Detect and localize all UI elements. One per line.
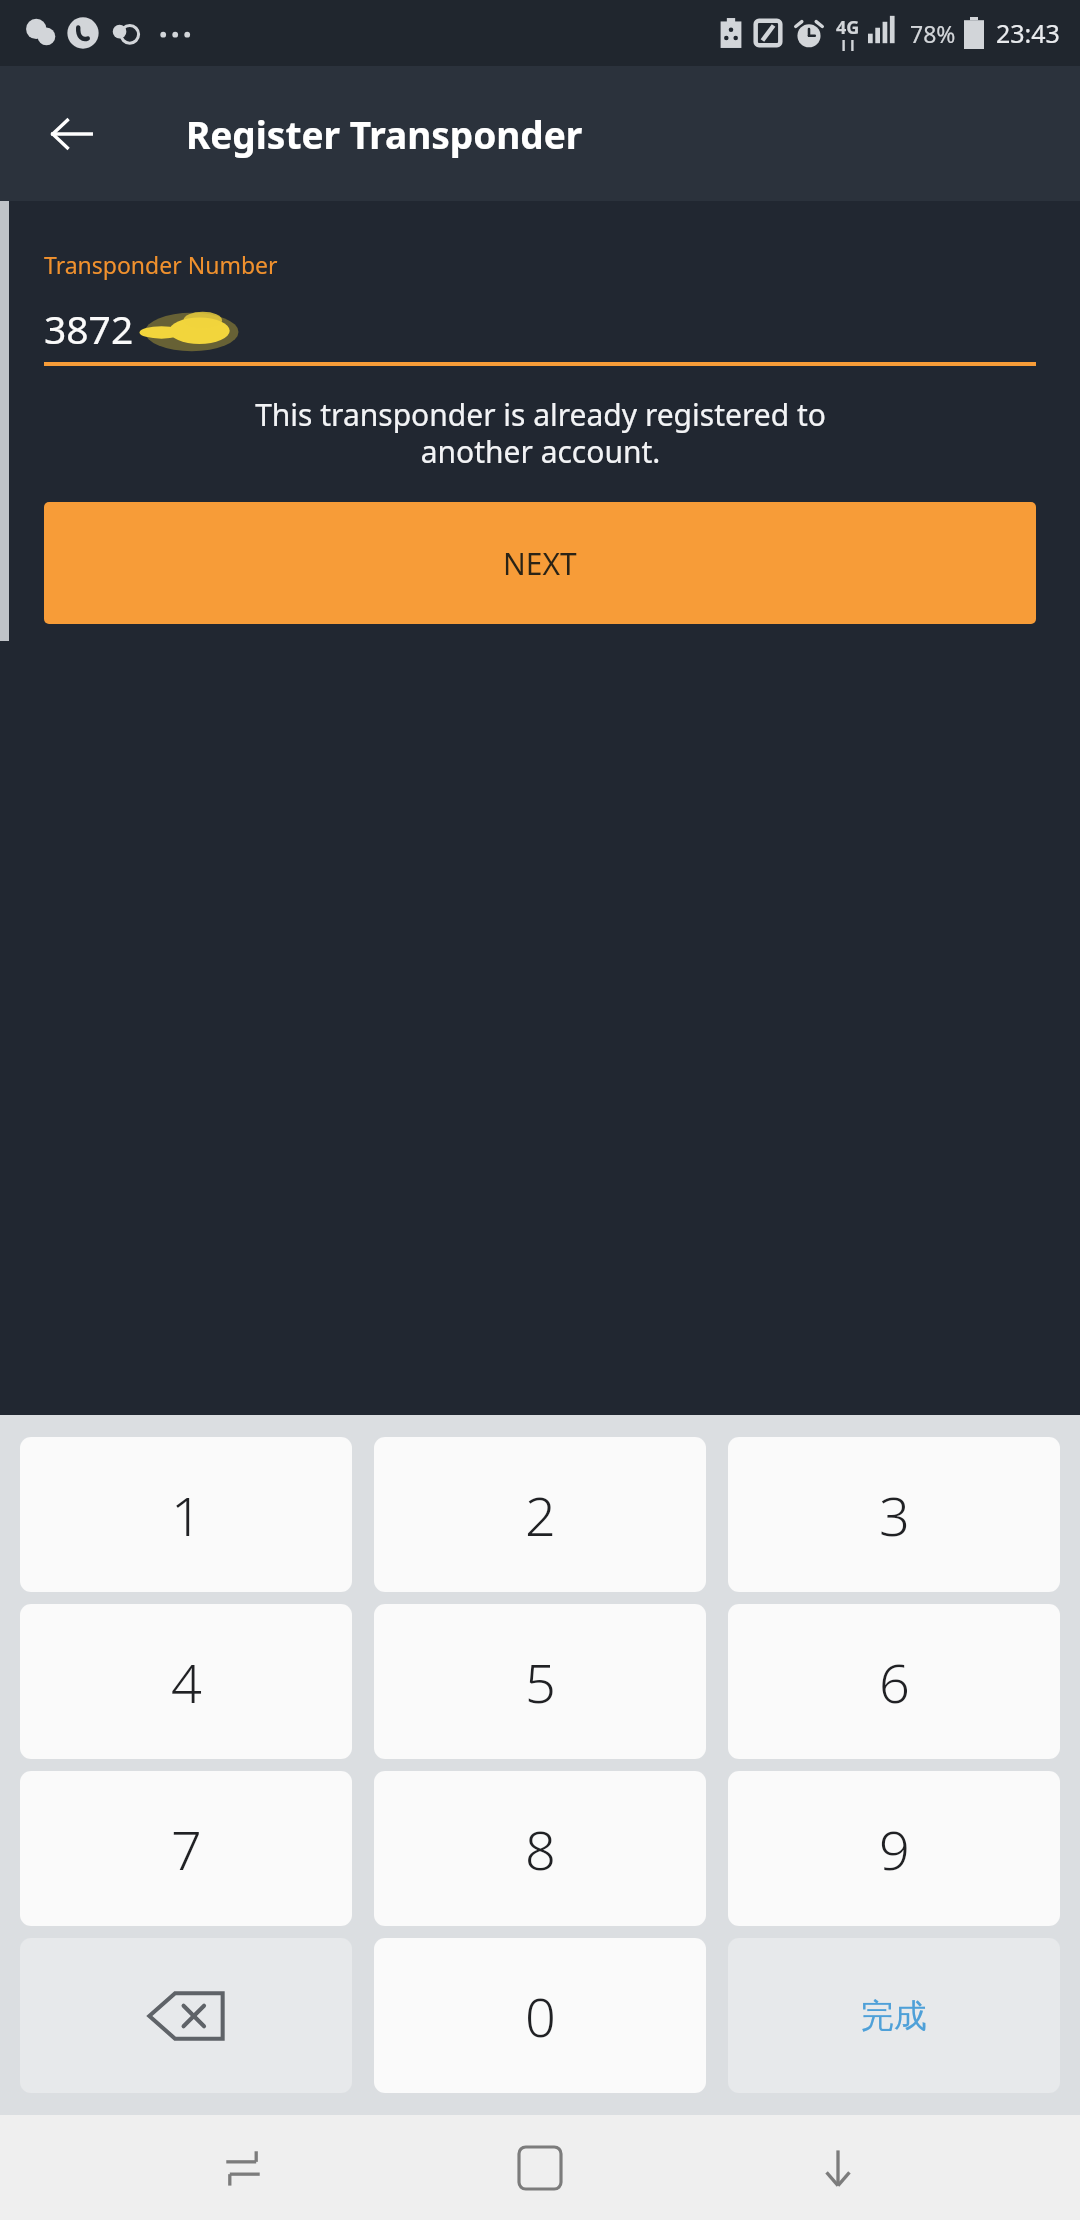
button[interactable]: 3 (728, 1437, 1060, 1592)
button[interactable]: 0 (374, 1938, 706, 2093)
staticText: 4G (836, 15, 860, 40)
staticText: 3 (879, 1478, 910, 1552)
button[interactable]: NEXT (44, 502, 1036, 624)
staticText: 4 (171, 1645, 202, 1719)
staticText: 6 (879, 1645, 910, 1719)
staticText: 23:43 (996, 16, 1060, 50)
button[interactable]: Backspace (20, 1938, 352, 2093)
button[interactable]: 1 (20, 1437, 352, 1592)
staticText: 1 (171, 1478, 202, 1552)
staticText: 9 (879, 1812, 910, 1886)
button[interactable]: 2 (374, 1437, 706, 1592)
button[interactable]: 完成 (728, 1938, 1060, 2093)
button[interactable]: Home (485, 2115, 595, 2220)
button[interactable]: Back (30, 92, 114, 176)
button[interactable]: 9 (728, 1771, 1060, 1926)
button[interactable]: 6 (728, 1604, 1060, 1759)
button[interactable]: Hide keyboard (783, 2115, 893, 2220)
staticText: NEXT (503, 543, 577, 584)
staticText: 完成 (861, 1995, 927, 2037)
button[interactable]: 7 (20, 1771, 352, 1926)
staticText: 0 (525, 1979, 556, 2053)
button[interactable]: 5 (374, 1604, 706, 1759)
staticText: 78% (910, 18, 956, 49)
button[interactable]: Recents (188, 2115, 298, 2220)
button[interactable]: 8 (374, 1771, 706, 1926)
staticText: This transponder is already registered t… (255, 394, 826, 472)
staticText: 8 (525, 1812, 556, 1886)
staticText: 7 (171, 1812, 202, 1886)
button[interactable]: 4 (20, 1604, 352, 1759)
staticText: 3872 (44, 302, 134, 355)
staticText: 5 (525, 1645, 556, 1719)
staticText: 2 (525, 1478, 556, 1552)
staticText: Transponder Number (44, 249, 278, 280)
staticText: Register Transponder (186, 109, 583, 159)
